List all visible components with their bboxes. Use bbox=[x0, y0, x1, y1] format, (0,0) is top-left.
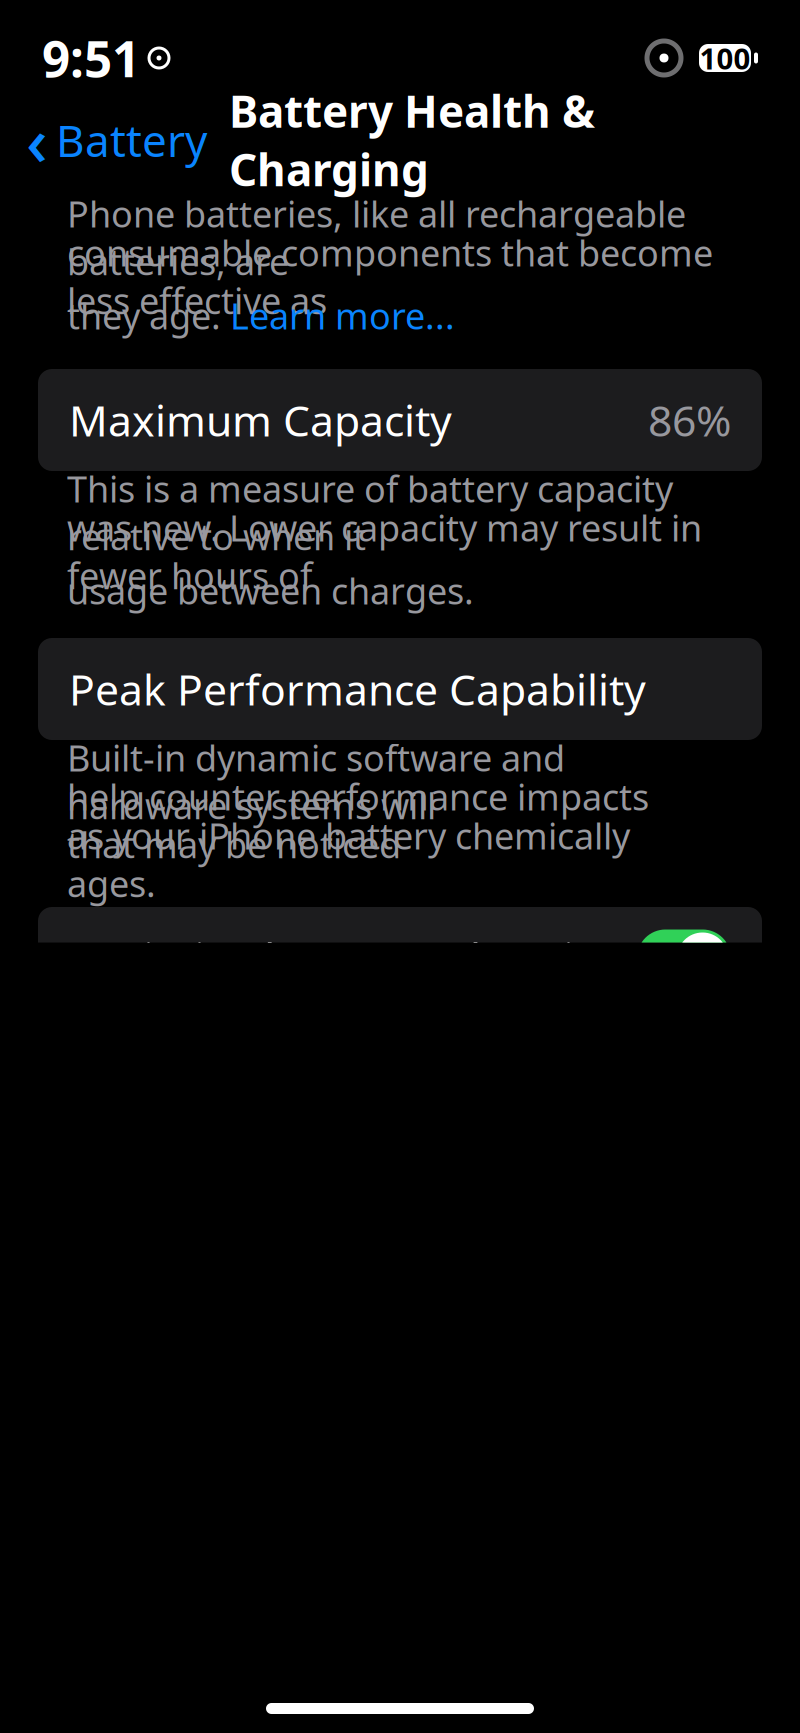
button[interactable]: Optimised Battery Charging bbox=[38, 907, 762, 1009]
staticText: Maximum Capacity bbox=[69, 392, 452, 448]
button[interactable]: Peak Performance Capability bbox=[38, 638, 762, 740]
staticText: 9:51 bbox=[42, 25, 140, 91]
staticText: Battery Health & Charging bbox=[229, 82, 595, 198]
staticText: they age. bbox=[67, 292, 230, 339]
staticText: Peak Performance Capability bbox=[69, 661, 646, 717]
staticText: consumable components that become less e… bbox=[67, 229, 713, 324]
staticText: Built-in dynamic software and hardware s… bbox=[67, 734, 565, 829]
button[interactable]: Learn more... bbox=[230, 292, 455, 339]
staticText: was new. Lower capacity may result in fe… bbox=[67, 504, 702, 599]
button[interactable]: ‹ bbox=[22, 90, 211, 190]
staticText: 86% bbox=[648, 392, 731, 448]
staticText: usage between charges. bbox=[67, 567, 474, 614]
staticText: This is a measure of battery capacity re… bbox=[67, 465, 673, 560]
staticText: Optimised Battery Charging bbox=[69, 930, 626, 986]
staticText: ‹ bbox=[26, 96, 48, 184]
staticText: Learn more... bbox=[230, 292, 455, 339]
staticText: as your iPhone battery chemically ages. bbox=[67, 812, 630, 907]
button[interactable]: Maximum Capacity bbox=[38, 369, 762, 471]
staticText: Phone batteries, like all rechargeable b… bbox=[67, 190, 686, 285]
staticText: help counter performance impacts that ma… bbox=[67, 773, 649, 868]
staticText: 100 bbox=[699, 38, 750, 77]
staticText: Battery bbox=[56, 111, 207, 169]
